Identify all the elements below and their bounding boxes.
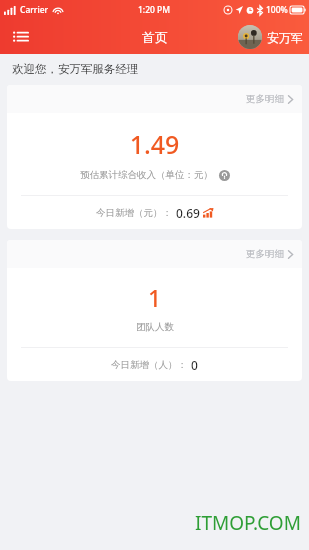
staticText: 100% <box>266 4 288 16</box>
button[interactable]: 更多明细 <box>7 85 302 113</box>
button[interactable]: 更多明细 <box>7 240 302 268</box>
staticText: 1:20 PM <box>138 4 171 16</box>
staticText: 预估累计综合收入（单位：元） <box>80 169 213 181</box>
staticText: 更多明细 <box>246 93 284 105</box>
staticText: 今日新增（人）： <box>111 359 187 371</box>
staticText: 1.49 <box>7 127 302 161</box>
staticText: 首页 <box>142 29 168 45</box>
button[interactable]: Menu <box>8 24 34 50</box>
button[interactable]: Help <box>219 170 230 181</box>
staticText: 团队人数 <box>136 321 174 333</box>
staticText: 0 <box>191 357 198 373</box>
staticText: 1 <box>7 282 302 313</box>
staticText: Carrier <box>20 4 49 16</box>
staticText: 今日新增（元）： <box>96 207 172 219</box>
staticText: 更多明细 <box>246 248 284 260</box>
staticText: 0.69 <box>176 205 200 221</box>
staticText: 安万军 <box>267 30 303 45</box>
staticText: 欢迎您，安万军服务经理 <box>12 62 139 76</box>
button[interactable]: 安万军 <box>238 25 303 49</box>
staticText: ITMOP.COM <box>195 510 301 536</box>
